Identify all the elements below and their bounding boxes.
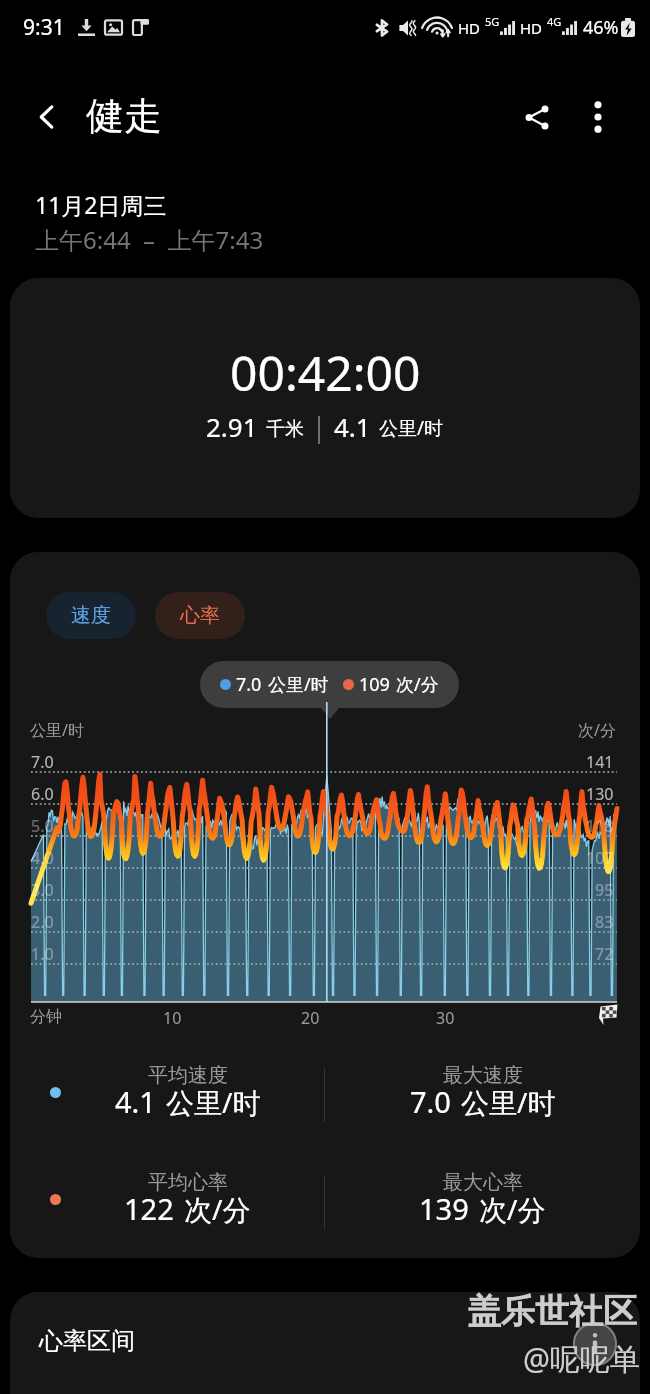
button[interactable]: Back bbox=[21, 91, 73, 143]
staticText: 1.0 bbox=[31, 943, 54, 965]
staticText: 次/分 bbox=[396, 672, 439, 697]
staticText: 公里/时 bbox=[166, 1083, 261, 1121]
staticText: 20 bbox=[301, 1007, 320, 1029]
staticText: 3.0 bbox=[31, 879, 54, 901]
staticText: 95 bbox=[595, 879, 614, 901]
staticText: 9:31 bbox=[23, 13, 65, 42]
staticText: 122 bbox=[124, 1189, 174, 1228]
staticText: 次/分 bbox=[479, 1190, 546, 1228]
staticText: 最大速度 bbox=[443, 1063, 523, 1088]
staticText: 公里/时 bbox=[461, 1083, 556, 1121]
staticText: 次/分 bbox=[578, 719, 616, 741]
staticText: 平均心率 bbox=[148, 1170, 228, 1195]
staticText: 分钟 bbox=[30, 1007, 62, 1027]
staticText: 心率 bbox=[180, 603, 220, 628]
staticText: 7.0 bbox=[410, 1082, 451, 1121]
staticText: 00:42:00 bbox=[230, 340, 421, 405]
staticText: 公里/时 bbox=[268, 672, 329, 697]
staticText: @呢呢单 bbox=[523, 1338, 640, 1379]
staticText: 盖乐世社区 bbox=[467, 1290, 637, 1333]
staticText: 109 bbox=[359, 672, 390, 697]
button[interactable]: More options bbox=[572, 91, 624, 143]
staticText: 72 bbox=[595, 943, 614, 965]
staticText: 118 bbox=[586, 815, 614, 837]
staticText: 速度 bbox=[71, 603, 111, 628]
button[interactable]: 速度 bbox=[46, 592, 136, 639]
button[interactable]: 00:42:00 bbox=[10, 278, 640, 518]
button[interactable]: 心率 bbox=[155, 592, 245, 639]
staticText: 5.0 bbox=[31, 815, 54, 837]
staticText: 11月2日周三 bbox=[35, 189, 167, 220]
staticText: 2.0 bbox=[31, 911, 54, 933]
staticText: 139 bbox=[419, 1189, 469, 1228]
staticText: 130 bbox=[586, 783, 614, 805]
staticText: 46% bbox=[583, 15, 619, 40]
staticText: HD bbox=[458, 18, 481, 38]
staticText: 30 bbox=[436, 1007, 455, 1029]
staticText: 最大心率 bbox=[443, 1170, 523, 1195]
staticText: 平均速度 bbox=[148, 1063, 228, 1088]
staticText: 公里/时 bbox=[379, 415, 444, 441]
staticText: 2.91 bbox=[206, 409, 258, 444]
staticText: 公里/时 bbox=[30, 719, 84, 741]
staticText: 心率区间 bbox=[39, 1326, 135, 1356]
staticText: 健走 bbox=[86, 92, 162, 140]
staticText: 6.0 bbox=[31, 783, 54, 805]
staticText: 7.0 bbox=[31, 751, 54, 773]
staticText: 千米 bbox=[266, 417, 304, 441]
staticText: 10 bbox=[163, 1007, 182, 1029]
staticText: 4G bbox=[547, 14, 562, 29]
staticText: 4.0 bbox=[31, 847, 54, 869]
staticText: 次/分 bbox=[184, 1190, 251, 1228]
button[interactable]: 心率区间 bbox=[10, 1292, 640, 1394]
staticText: HD bbox=[520, 18, 543, 38]
button[interactable]: Share bbox=[511, 91, 563, 143]
staticText: 7.0 bbox=[236, 672, 262, 697]
staticText: 4.1 bbox=[334, 409, 371, 444]
staticText: 83 bbox=[595, 911, 614, 933]
staticText: 上午6:44 – 上午7:43 bbox=[35, 223, 264, 256]
staticText: 4.1 bbox=[115, 1082, 156, 1121]
staticText: 141 bbox=[586, 751, 614, 773]
staticText: 107 bbox=[586, 847, 614, 869]
staticText: 5G bbox=[485, 14, 500, 29]
